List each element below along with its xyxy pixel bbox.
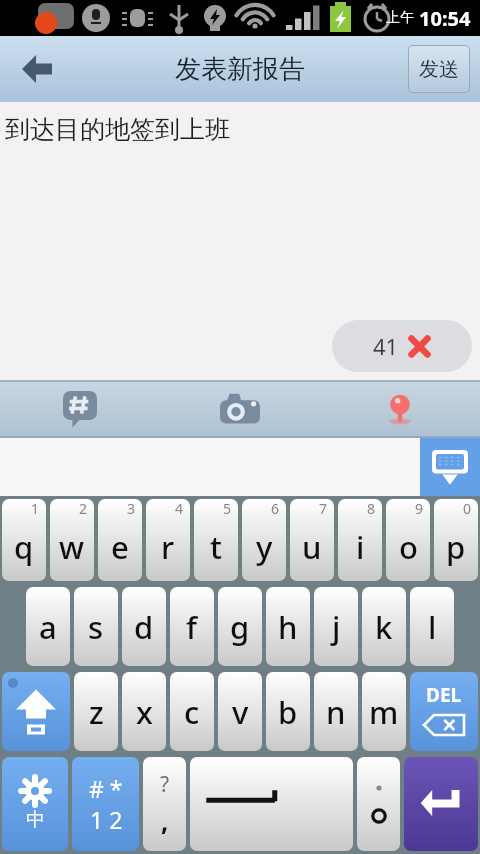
staticText: 中 [26, 808, 45, 832]
staticText: 2 [79, 499, 88, 518]
staticText: 1 2 [90, 804, 123, 835]
staticText: z [89, 691, 104, 733]
staticText: f [186, 606, 198, 648]
staticText: g [230, 606, 250, 648]
staticText: i [356, 526, 365, 568]
staticText: 发表新报告 [175, 53, 305, 86]
staticText: 3 [127, 499, 136, 518]
button[interactable]: j [314, 587, 358, 666]
button[interactable]: 9 [386, 499, 430, 581]
staticText: l [428, 606, 437, 648]
button[interactable]: k [362, 587, 406, 666]
button[interactable]: 41 [332, 320, 472, 372]
staticText: w [59, 526, 85, 568]
staticText: b [278, 691, 298, 733]
staticText: o [399, 526, 418, 568]
button[interactable]: n [314, 672, 358, 751]
staticText: 10:54 [419, 5, 471, 32]
button[interactable]: f [170, 587, 214, 666]
staticText: h [278, 606, 298, 648]
staticText: a [39, 606, 57, 648]
button[interactable] [357, 757, 400, 851]
button[interactable]: 2 [50, 499, 94, 581]
staticText: j [332, 606, 341, 648]
staticText: q [14, 526, 34, 568]
staticText: 发送 [419, 57, 459, 82]
staticText: y [256, 526, 273, 568]
staticText: s [88, 606, 104, 648]
button[interactable]: # * [72, 757, 139, 851]
staticText: n [326, 691, 346, 733]
staticText: x [136, 691, 153, 733]
staticText: m [369, 691, 399, 733]
staticText: 7 [319, 499, 328, 518]
staticText: v [232, 691, 249, 733]
button[interactable]: g [218, 587, 262, 666]
staticText: r [161, 526, 175, 568]
button[interactable]: ? [143, 757, 186, 851]
staticText: d [134, 606, 154, 648]
button[interactable]: Input settings [2, 757, 68, 851]
button[interactable]: Shift [2, 672, 70, 751]
button[interactable]: Topic [0, 382, 160, 436]
button[interactable]: a [26, 587, 70, 666]
button[interactable]: 0 [434, 499, 478, 581]
button[interactable]: Back [0, 36, 74, 102]
button[interactable]: Location [320, 382, 480, 436]
button[interactable]: 4 [146, 499, 190, 581]
staticText: c [184, 691, 200, 733]
staticText: e [111, 526, 129, 568]
staticText: 9 [415, 499, 424, 518]
button[interactable]: Space [190, 757, 353, 851]
staticText: , [161, 803, 169, 838]
staticText: 8 [367, 499, 376, 518]
button[interactable]: c [170, 672, 214, 751]
button[interactable]: Hide keyboard [420, 438, 480, 496]
button[interactable]: m [362, 672, 406, 751]
staticText: p [446, 526, 466, 568]
button[interactable]: s [74, 587, 118, 666]
staticText: 6 [271, 499, 280, 518]
button[interactable]: 7 [290, 499, 334, 581]
button[interactable]: v [218, 672, 262, 751]
button[interactable]: l [410, 587, 454, 666]
button[interactable]: 6 [242, 499, 286, 581]
staticText: t [210, 526, 222, 568]
button[interactable]: d [122, 587, 166, 666]
button[interactable]: 3 [98, 499, 142, 581]
button[interactable]: 5 [194, 499, 238, 581]
button[interactable]: 8 [338, 499, 382, 581]
button[interactable]: h [266, 587, 310, 666]
button[interactable]: Camera [160, 382, 320, 436]
staticText: k [375, 606, 393, 648]
staticText: 到达目的地签到上班 [5, 114, 230, 145]
staticText: 41 [373, 331, 399, 361]
button[interactable]: x [122, 672, 166, 751]
button[interactable]: z [74, 672, 118, 751]
button[interactable]: 发送 [409, 46, 469, 92]
staticText: 1 [31, 499, 40, 518]
staticText: DEL [426, 682, 462, 708]
button[interactable]: 1 [2, 499, 46, 581]
button[interactable]: Enter [404, 757, 478, 851]
staticText: 4 [175, 499, 184, 518]
staticText: 0 [463, 499, 472, 518]
staticText: # * [89, 773, 123, 804]
staticText: 上午 [386, 9, 414, 27]
staticText: 5 [223, 499, 232, 518]
button[interactable]: b [266, 672, 310, 751]
staticText: u [302, 526, 322, 568]
button[interactable]: Delete [410, 672, 478, 751]
staticText: ? [160, 770, 170, 799]
